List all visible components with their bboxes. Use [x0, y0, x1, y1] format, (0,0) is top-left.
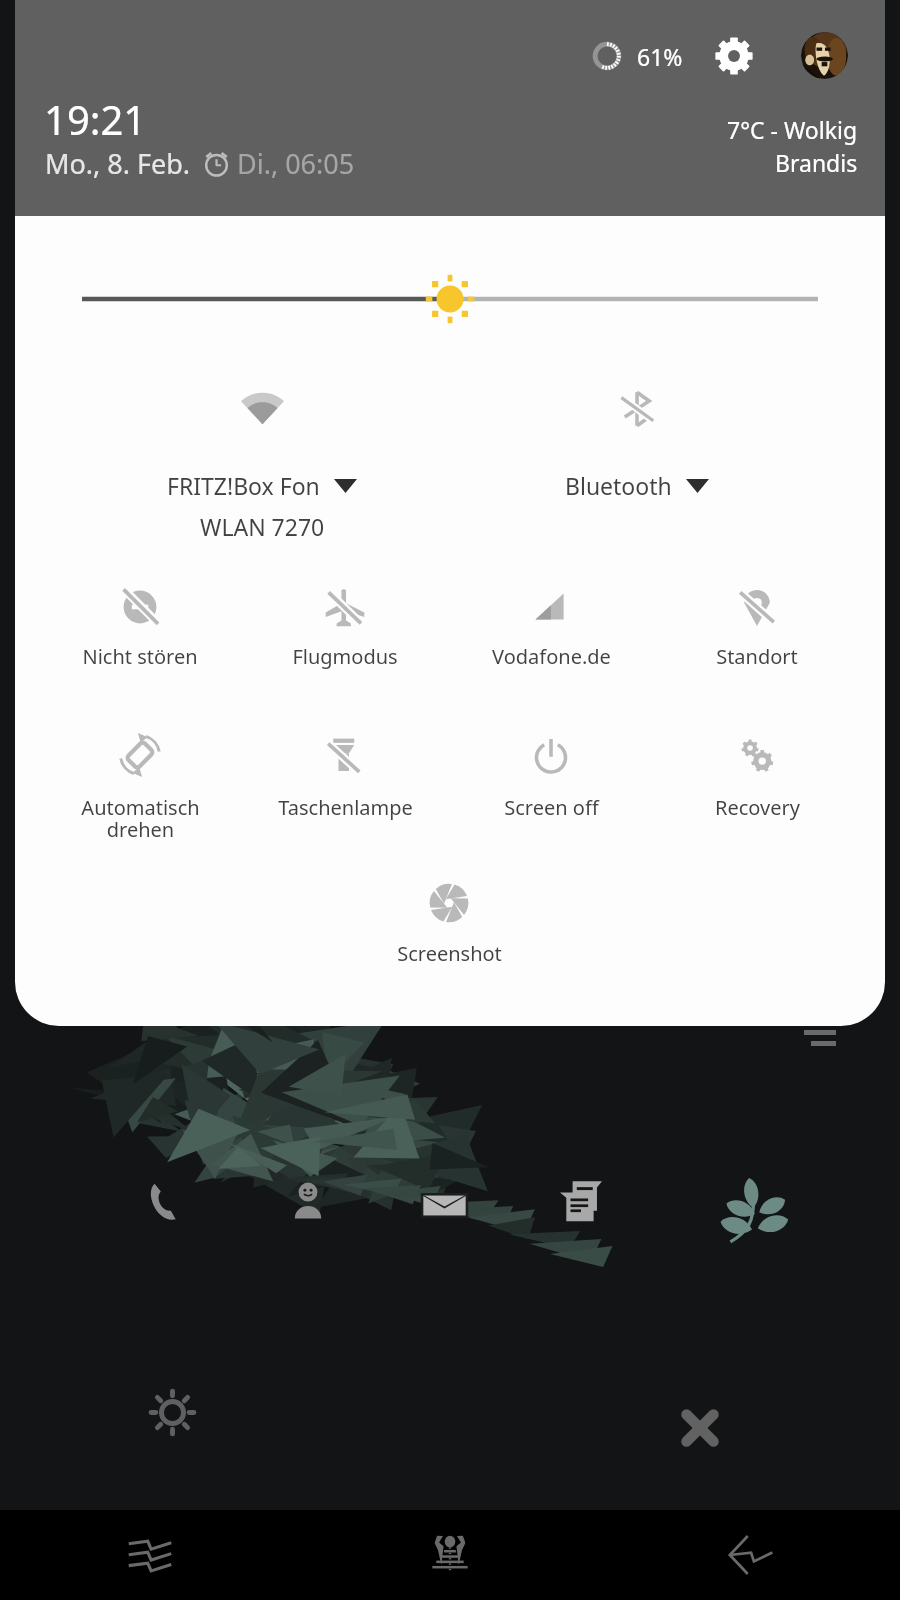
staticText: Bluetooth — [565, 470, 672, 501]
staticText: Taschenlampe — [278, 794, 413, 821]
staticText: WLAN 7270 — [200, 511, 325, 542]
button[interactable]: Brightness — [149, 1389, 196, 1436]
button[interactable]: Vodafone.de — [448, 586, 654, 728]
button[interactable]: User profile — [801, 32, 848, 79]
button[interactable]: Plants — [716, 1172, 788, 1244]
button[interactable]: Standort — [654, 586, 860, 728]
staticText: Di., 06:05 — [237, 145, 355, 182]
staticText: Automatisch drehen — [81, 794, 200, 843]
button[interactable]: Automatisch drehen — [37, 734, 243, 879]
button[interactable]: Battery 61 percent — [589, 30, 683, 82]
staticText: Screenshot — [397, 940, 502, 967]
staticText: Brandis — [775, 147, 858, 178]
button[interactable]: Screenshot — [346, 882, 552, 1025]
staticText: Vodafone.de — [492, 643, 611, 670]
button[interactable]: Contacts — [286, 1178, 330, 1222]
staticText: Flugmodus — [292, 643, 398, 670]
button[interactable]: Notes — [560, 1180, 602, 1222]
button[interactable]: Phone — [144, 1178, 192, 1226]
staticText: 19:21 — [44, 92, 147, 146]
staticText: Nicht stören — [82, 643, 198, 670]
button[interactable]: Screen off — [448, 734, 654, 879]
staticText: 7°C - Wolkig — [727, 114, 858, 145]
button[interactable] — [15, 246, 885, 350]
button[interactable]: Flugmodus — [242, 586, 448, 728]
button[interactable]: Recovery — [654, 734, 860, 879]
button[interactable]: Nicht stören — [37, 586, 243, 728]
button[interactable]: Settings — [709, 31, 759, 81]
button[interactable]: Close — [681, 1409, 719, 1447]
button[interactable]: Taschenlampe — [242, 734, 448, 879]
button[interactable]: Back — [600, 1510, 900, 1600]
staticText: Mo., 8. Feb. — [45, 145, 191, 182]
button[interactable]: FRITZ!Box Fon — [74, 391, 450, 561]
staticText: 61% — [637, 41, 683, 72]
staticText: FRITZ!Box Fon — [167, 470, 320, 501]
button[interactable]: Mail — [419, 1180, 470, 1231]
staticText: Recovery — [715, 794, 800, 821]
button[interactable]: Recents — [0, 1510, 300, 1600]
button[interactable]: Bluetooth — [449, 388, 825, 518]
staticText: Screen off — [504, 794, 599, 821]
staticText: Standort — [716, 643, 798, 670]
button[interactable]: Home — [300, 1510, 600, 1600]
